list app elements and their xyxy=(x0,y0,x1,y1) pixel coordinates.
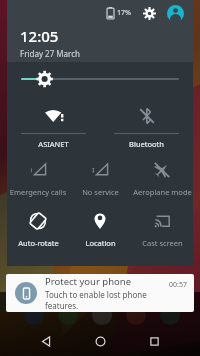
button[interactable]: Location xyxy=(69,204,131,255)
staticText: No service xyxy=(82,187,119,197)
button[interactable]: ASIANET xyxy=(7,96,100,153)
button[interactable]: Brightness xyxy=(7,62,193,96)
staticText: Touch to enable lost phone features. xyxy=(45,289,169,311)
staticText: ASIANET xyxy=(38,139,69,149)
button[interactable]: Back xyxy=(33,328,59,354)
button[interactable]: Protect your phone xyxy=(6,274,194,312)
staticText: Aeroplane mode xyxy=(133,187,192,197)
button[interactable]: Auto-rotate xyxy=(7,204,69,255)
button[interactable]: User profile xyxy=(166,4,184,22)
staticText: 12:05 xyxy=(20,26,59,46)
staticText: Location xyxy=(85,238,116,248)
button[interactable]: Settings xyxy=(141,5,158,22)
staticText: Protect your phone xyxy=(45,275,132,288)
staticText: Emergency calls only xyxy=(7,187,69,197)
button[interactable]: Aeroplane mode xyxy=(131,153,193,204)
staticText: 17% xyxy=(117,8,131,18)
staticText: Bluetooth xyxy=(129,139,164,149)
button[interactable]: Recents xyxy=(141,328,167,354)
staticText: 00:57 xyxy=(169,280,187,290)
button[interactable]: Emergency calls only xyxy=(7,153,69,204)
button[interactable]: Bluetooth xyxy=(100,96,193,153)
staticText: Friday 27 March xyxy=(20,48,80,59)
button[interactable]: Home xyxy=(87,328,113,354)
button[interactable]: No service xyxy=(69,153,131,204)
staticText: Cast screen xyxy=(142,238,183,248)
staticText: Auto-rotate xyxy=(18,238,59,248)
button[interactable]: Cast screen xyxy=(131,204,193,255)
